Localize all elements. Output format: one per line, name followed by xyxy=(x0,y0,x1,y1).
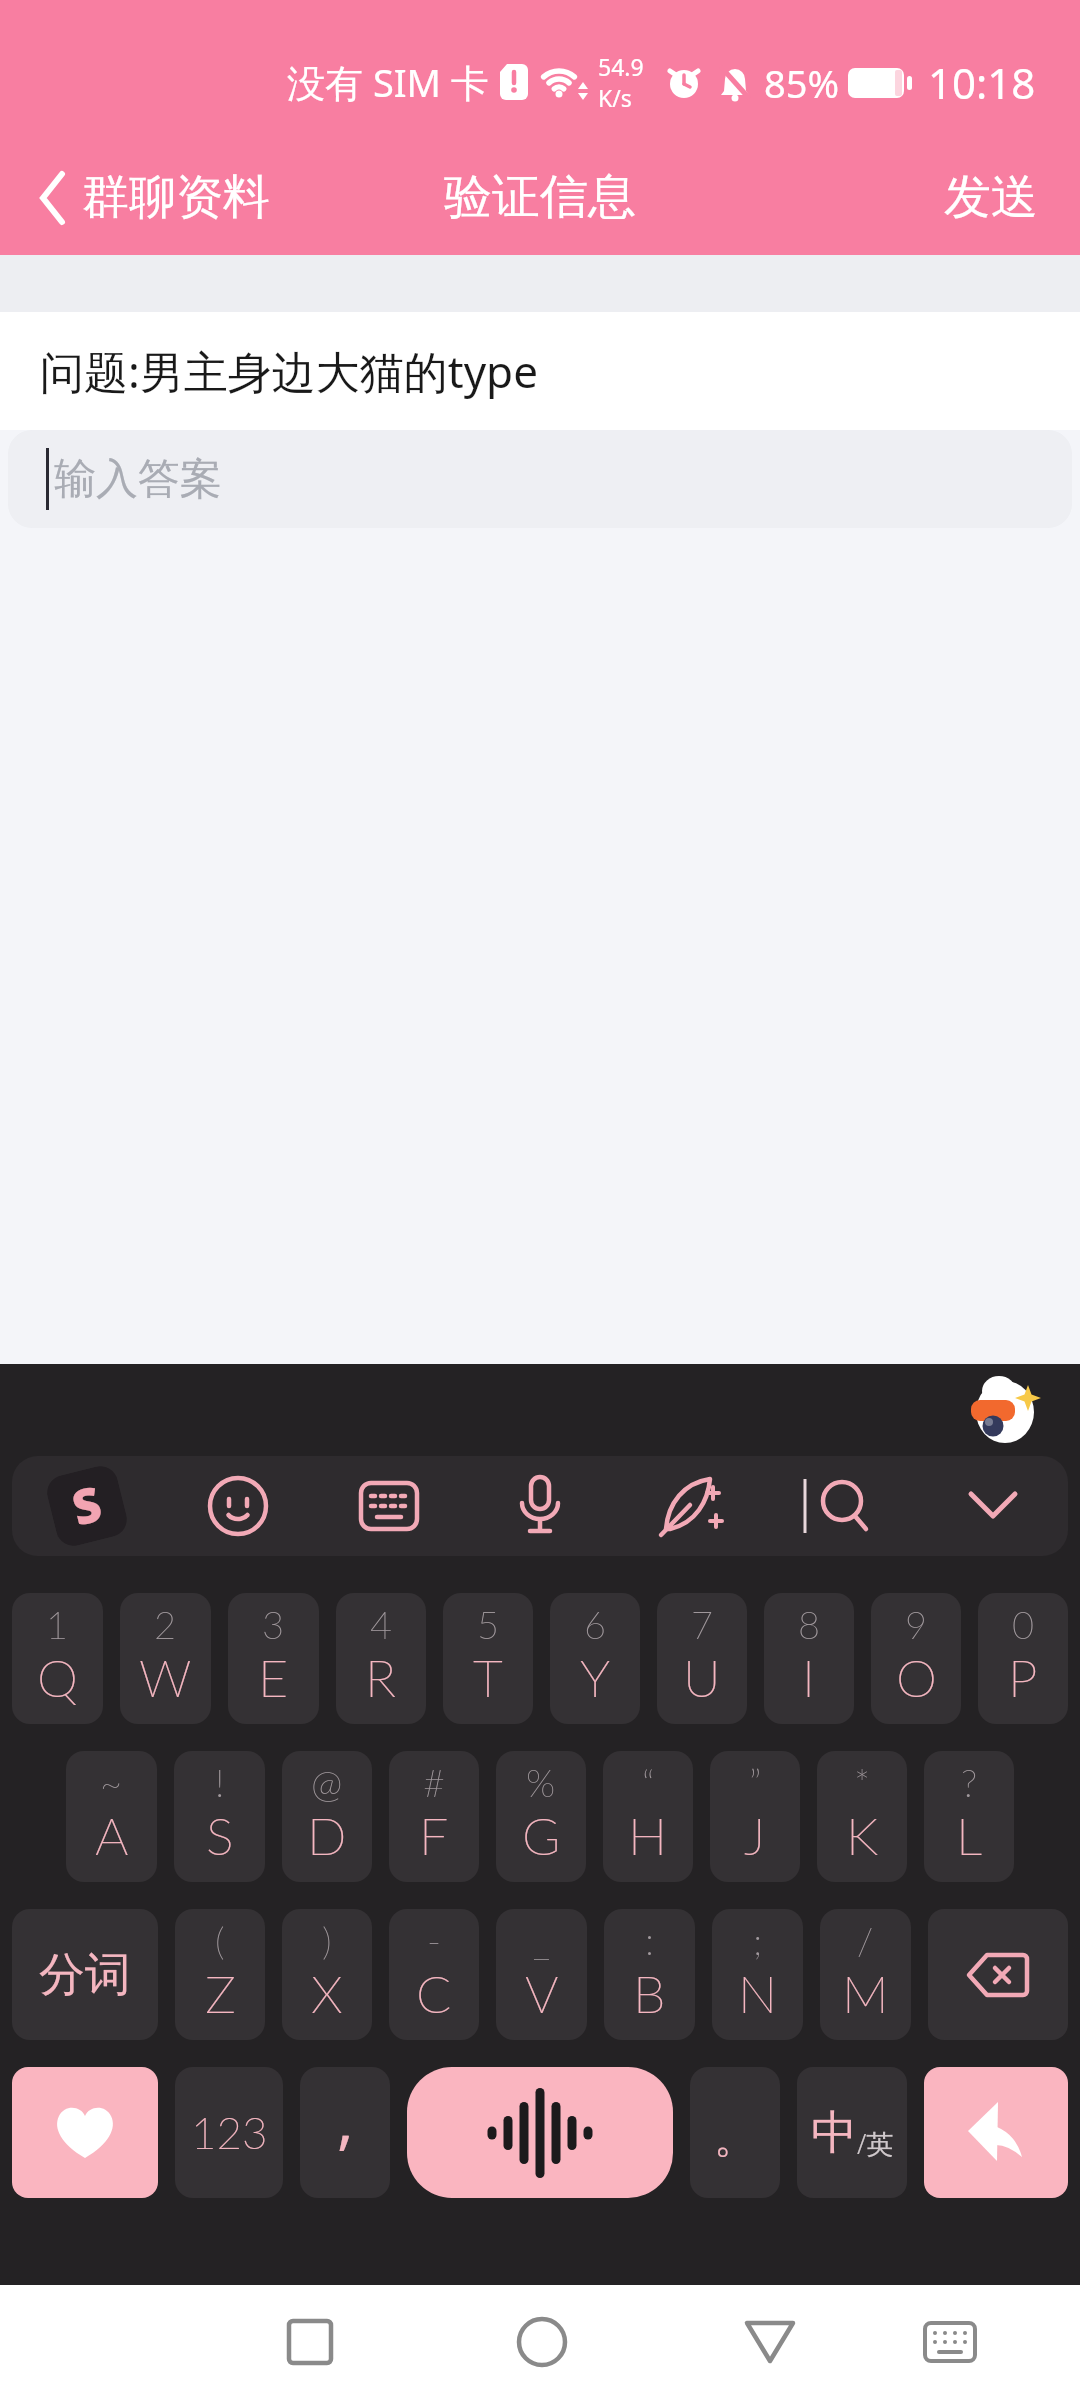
staticText: 0 xyxy=(1012,1601,1035,1647)
button[interactable]: 9 xyxy=(871,1593,961,1724)
staticText: P xyxy=(1008,1646,1038,1708)
staticText: 4 xyxy=(370,1601,393,1647)
button[interactable] xyxy=(738,2310,802,2374)
button[interactable]: 。 xyxy=(690,2067,780,2198)
staticText: ) xyxy=(322,1917,332,1963)
button[interactable] xyxy=(924,2067,1068,2198)
staticText: S xyxy=(65,1470,108,1539)
button[interactable]: 群聊资料 xyxy=(38,168,270,227)
button[interactable] xyxy=(510,2310,574,2374)
staticText: D xyxy=(307,1804,347,1866)
button[interactable]: 8 xyxy=(764,1593,854,1724)
button[interactable]: 0 xyxy=(978,1593,1068,1724)
button[interactable] xyxy=(464,1456,615,1556)
button[interactable] xyxy=(313,1456,464,1556)
button[interactable] xyxy=(615,1456,766,1556)
staticText: K xyxy=(846,1804,879,1866)
staticText: Z xyxy=(205,1962,236,2024)
button[interactable]: 发送 xyxy=(944,168,1038,227)
staticText: V xyxy=(525,1962,559,2024)
staticText: 1 xyxy=(46,1601,69,1647)
staticText: ( xyxy=(215,1917,225,1963)
button[interactable]: 3 xyxy=(228,1593,319,1724)
button[interactable] xyxy=(766,1456,917,1556)
staticText: ~ xyxy=(100,1759,123,1805)
button[interactable] xyxy=(972,1375,1038,1445)
button[interactable]: # xyxy=(389,1751,479,1882)
button[interactable] xyxy=(918,2310,982,2374)
button[interactable]: ” xyxy=(710,1751,800,1882)
staticText: R xyxy=(365,1646,397,1708)
staticText: N xyxy=(738,1962,778,2024)
staticText: 群聊资料 xyxy=(82,168,270,227)
button[interactable]: 7 xyxy=(657,1593,747,1724)
staticText: F xyxy=(419,1804,449,1866)
staticText: 中 xyxy=(811,2104,857,2162)
staticText: # xyxy=(423,1759,446,1805)
staticText: Y xyxy=(580,1646,611,1708)
button[interactable] xyxy=(162,1456,313,1556)
staticText: J xyxy=(744,1804,766,1866)
staticText: : xyxy=(645,1917,654,1963)
button[interactable]: : xyxy=(604,1909,695,2040)
staticText: X xyxy=(311,1962,343,2024)
button[interactable]: * xyxy=(817,1751,907,1882)
staticText: / xyxy=(857,1917,874,1963)
button[interactable]: 2 xyxy=(120,1593,211,1724)
staticText: ” xyxy=(749,1759,762,1805)
button[interactable] xyxy=(917,1456,1068,1556)
staticText: Q xyxy=(37,1646,78,1708)
staticText: U xyxy=(683,1646,721,1708)
staticText: W xyxy=(139,1646,192,1708)
staticText: 输入答案 xyxy=(54,453,222,506)
staticText: E xyxy=(258,1646,289,1708)
staticText: 9 xyxy=(905,1601,928,1647)
button[interactable]: - xyxy=(389,1909,479,2040)
button[interactable]: ( xyxy=(175,1909,265,2040)
button[interactable]: “ xyxy=(603,1751,693,1882)
staticText: 3 xyxy=(262,1601,285,1647)
button[interactable] xyxy=(407,2067,673,2198)
button[interactable] xyxy=(928,1909,1068,2040)
button[interactable]: 5 xyxy=(443,1593,533,1724)
staticText: K/s xyxy=(598,82,632,113)
staticText: A xyxy=(95,1804,129,1866)
staticText: 8 xyxy=(798,1601,821,1647)
staticText: H xyxy=(628,1804,668,1866)
staticText: 发送 xyxy=(944,168,1038,227)
staticText: 54.9 xyxy=(598,51,644,82)
button[interactable] xyxy=(278,2310,342,2374)
button[interactable]: ; xyxy=(712,1909,803,2040)
staticText: ? xyxy=(961,1759,978,1805)
button[interactable]: ~ xyxy=(66,1751,157,1882)
staticText: 2 xyxy=(154,1601,177,1647)
button[interactable]: 分词 xyxy=(12,1909,158,2040)
staticText: 分词 xyxy=(39,1946,131,2004)
staticText: % xyxy=(526,1759,556,1805)
button[interactable]: ) xyxy=(282,1909,372,2040)
staticText: /英 xyxy=(857,2125,894,2162)
staticText: 验证信息 xyxy=(444,167,636,227)
button[interactable]: 中 xyxy=(797,2067,907,2198)
button[interactable]: 4 xyxy=(336,1593,426,1724)
staticText: T xyxy=(473,1646,503,1708)
staticText: 7 xyxy=(691,1601,714,1647)
staticText: 85% xyxy=(764,57,840,109)
button[interactable]: ? xyxy=(924,1751,1014,1882)
button[interactable]: 1 xyxy=(12,1593,103,1724)
button[interactable] xyxy=(12,2067,158,2198)
button[interactable]: @ xyxy=(282,1751,372,1882)
button[interactable]: 输入答案 xyxy=(8,430,1072,528)
staticText: 。 xyxy=(714,2112,756,2165)
staticText: L xyxy=(956,1804,983,1866)
button[interactable]: % xyxy=(496,1751,586,1882)
button[interactable]: ! xyxy=(174,1751,265,1882)
button[interactable]: / xyxy=(820,1909,911,2040)
button[interactable]: 6 xyxy=(550,1593,640,1724)
staticText: O xyxy=(896,1646,937,1708)
button[interactable]: 123 xyxy=(175,2067,283,2198)
staticText: @ xyxy=(311,1759,343,1805)
button[interactable]: , xyxy=(300,2067,390,2198)
button[interactable]: _ xyxy=(496,1909,587,2040)
button[interactable]: S xyxy=(12,1456,162,1556)
